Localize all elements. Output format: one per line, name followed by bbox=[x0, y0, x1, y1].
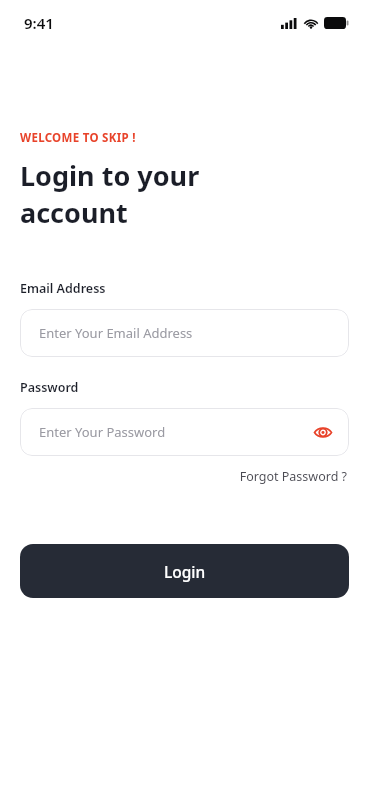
button[interactable]: Forgot Password ? bbox=[237, 465, 349, 488]
button[interactable]: Show password bbox=[309, 418, 337, 446]
staticText: Login to your account bbox=[20, 157, 200, 231]
staticText: Forgot Password ? bbox=[239, 468, 347, 485]
staticText: Login bbox=[164, 561, 206, 582]
staticText: 9:41 bbox=[24, 13, 54, 33]
staticText: Enter Your Email Address bbox=[39, 324, 193, 342]
button[interactable]: Login bbox=[20, 544, 349, 598]
staticText: Email Address bbox=[20, 280, 106, 297]
staticText: WELCOME TO SKIP ! bbox=[20, 130, 136, 146]
staticText: Password bbox=[20, 379, 79, 396]
button[interactable]: Enter Your Email Address bbox=[20, 309, 349, 357]
staticText: Enter Your Password bbox=[39, 423, 166, 441]
button[interactable]: Enter Your Password bbox=[20, 408, 349, 456]
